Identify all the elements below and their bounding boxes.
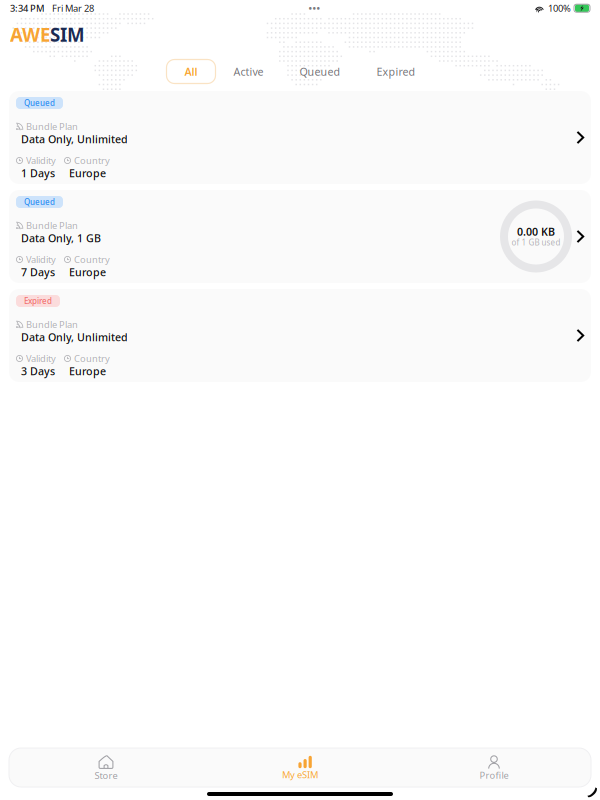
staticText: Store [94,769,117,782]
staticText: Validity [26,154,56,167]
staticText: 3:34 PM [10,2,45,14]
button[interactable]: Store [9,748,203,787]
button[interactable]: Active [215,59,281,83]
staticText: Data Only, Unlimited [21,330,128,344]
staticText: Queued [24,197,55,207]
staticText: Queued [24,98,55,108]
staticText: Fri Mar 28 [52,2,94,14]
button[interactable]: Queued [9,91,591,184]
staticText: of 1 GB used [511,237,560,248]
staticText: Bundle Plan [26,219,78,232]
staticText: Expired [24,296,52,306]
button[interactable]: Profile [397,748,591,787]
button[interactable]: Queued [281,59,358,83]
staticText: Europe [69,364,106,378]
staticText: My eSIM [282,768,318,781]
staticText: Validity [26,352,56,365]
staticText: Bundle Plan [26,120,78,133]
button[interactable]: Expired [358,59,433,83]
staticText: Profile [479,769,508,781]
staticText: Country [74,154,110,167]
staticText: Data Only, Unlimited [21,132,128,146]
staticText: Europe [69,265,106,279]
staticText: Validity [26,253,56,266]
staticText: SIM [50,22,85,47]
staticText: Active [233,64,263,79]
staticText: Queued [299,64,340,79]
button[interactable]: All [166,59,215,83]
staticText: ••• [308,2,320,14]
staticText: Expired [376,64,415,79]
staticText: Country [74,352,110,365]
button[interactable]: Queued [9,190,591,283]
staticText: AWE [10,22,50,47]
button[interactable]: My eSIM [203,749,397,786]
staticText: 0.00 KB [517,224,555,239]
staticText: All [184,64,197,79]
staticText: Data Only, 1 GB [21,231,101,245]
staticText: 3 Days [21,364,55,378]
staticText: Europe [69,166,106,180]
staticText: Country [74,253,110,266]
button[interactable]: Expired [9,289,591,382]
staticText: Bundle Plan [26,318,78,331]
staticText: 1 Days [21,166,55,180]
staticText: 7 Days [21,265,55,279]
staticText: 100% [548,2,571,14]
